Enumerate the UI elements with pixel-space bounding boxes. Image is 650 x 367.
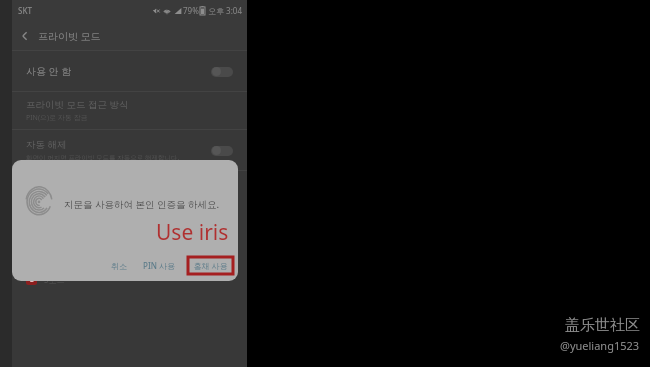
staticText: 취소 [111, 261, 127, 271]
staticText: 사용 안 함 [26, 64, 211, 78]
button[interactable]: 사용 안 함 [12, 51, 247, 91]
staticText: 자동 해제 [26, 138, 67, 151]
button[interactable]: Toggle [211, 66, 233, 77]
staticText: SKT [18, 5, 32, 16]
staticText: 지문을 사용하여 본인 인증을 하세요. [64, 198, 219, 211]
staticText: 프라이빗 모드 [38, 29, 101, 43]
button[interactable]: 취소 [107, 257, 131, 275]
staticText: S노트 [44, 274, 65, 285]
staticText: 프라이빗 모드 접근 방식 [26, 98, 129, 111]
staticText: @yueliang1523 [560, 338, 640, 353]
button[interactable]: 프라이빗 모드 접근 방식 [12, 92, 247, 129]
staticText: 오후 3:04 [208, 5, 242, 16]
button[interactable]: 홍채 사용 [187, 256, 234, 275]
staticText: S [30, 275, 34, 285]
staticText: PIN(으)로 자동 잠금 [26, 113, 88, 123]
staticText: 79% [183, 5, 199, 16]
button[interactable]: 내 파일 [12, 249, 247, 269]
button[interactable]: PIN 사용 [139, 256, 179, 275]
staticText: 화면이 꺼지면 프라이빗 모드를 자동으로 해제합니다. [26, 153, 180, 162]
staticText: 홍채 사용 [193, 260, 228, 271]
staticText: 盖乐世社区 [565, 316, 640, 335]
button[interactable]: Back [12, 23, 38, 49]
button[interactable]: S [12, 269, 247, 289]
button[interactable]: 음성 녹음 [12, 229, 247, 249]
button[interactable]: 음악 [12, 209, 247, 229]
staticText: PIN 사용 [143, 260, 175, 271]
button[interactable]: 자동 해제 [12, 130, 247, 170]
staticText: Use iris [156, 218, 229, 247]
button[interactable]: Toggle [211, 145, 233, 156]
